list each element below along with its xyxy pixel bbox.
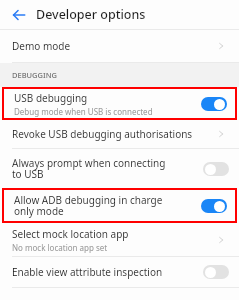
button[interactable]: Enable view attribute inspection: [0, 257, 239, 287]
button[interactable]: On: [201, 199, 227, 213]
staticText: USB debugging: [14, 91, 88, 105]
staticText: Select mock location app: [12, 227, 129, 241]
staticText: Revoke USB debugging authorisations: [12, 127, 193, 141]
button[interactable]: Off: [203, 265, 229, 279]
button[interactable]: Always prompt when connecting to USB: [0, 149, 239, 188]
staticText: Debug mode when USB is connected: [14, 106, 153, 117]
button[interactable]: Demo mode: [0, 30, 239, 62]
staticText: Allow ADB debugging in charge only mode: [14, 193, 184, 218]
staticText: Enable view attribute inspection: [12, 265, 163, 279]
staticText: Demo mode: [12, 39, 71, 53]
button[interactable]: Off: [203, 162, 229, 176]
staticText: Always prompt when connecting to USB: [12, 156, 172, 181]
staticText: Developer options: [36, 6, 146, 23]
button[interactable]: Allow ADB debugging in charge only mode: [2, 188, 237, 223]
button[interactable]: On: [201, 97, 227, 111]
button[interactable]: USB debugging: [2, 87, 237, 120]
button[interactable]: Revoke USB debugging authorisations: [0, 120, 239, 148]
staticText: DEBUGGING: [12, 70, 57, 80]
button[interactable]: Back: [6, 2, 32, 28]
staticText: No mock location app set: [12, 242, 108, 253]
button[interactable]: Select mock location app: [0, 223, 239, 256]
